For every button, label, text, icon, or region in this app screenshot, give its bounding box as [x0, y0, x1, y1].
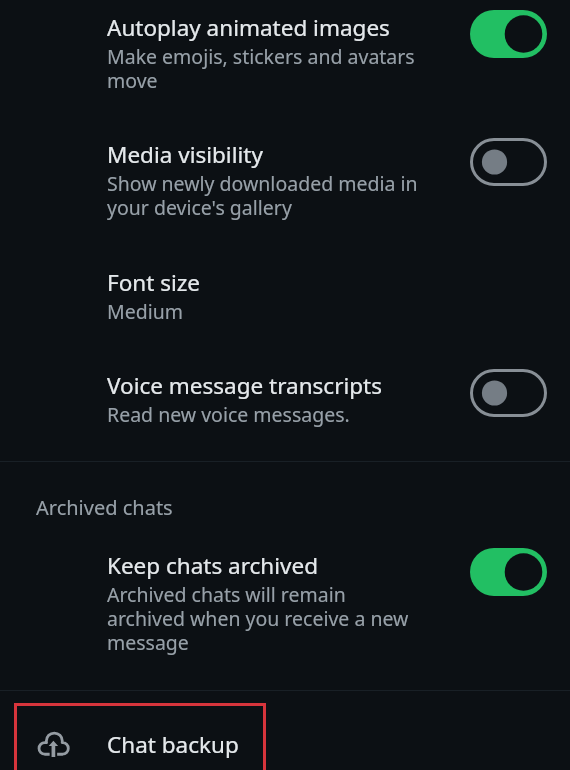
staticText: Chat backup [107, 731, 239, 759]
button[interactable]: Autoplay animated images [470, 10, 547, 58]
staticText: Media visibility [107, 141, 263, 169]
button[interactable] [0, 528, 570, 690]
button[interactable]: Keep chats archived [470, 548, 547, 596]
staticText: Make emojis, stickers and avatars move [107, 45, 419, 93]
staticText: Read new voice messages. [107, 403, 437, 427]
staticText: Medium [107, 300, 423, 324]
button[interactable] [0, 348, 570, 461]
staticText: Voice message transcripts [107, 372, 382, 400]
button[interactable]: Media visibility [470, 138, 547, 186]
button[interactable] [0, 0, 570, 117]
staticText: Keep chats archived [107, 552, 319, 580]
staticText: Font size [107, 269, 201, 297]
button[interactable]: Chat backup [14, 703, 266, 770]
staticText: Archived chats will remain archived when… [107, 583, 419, 655]
staticText: Show newly downloaded media in your devi… [107, 172, 423, 220]
button[interactable] [0, 117, 570, 245]
button[interactable]: Voice message transcripts [470, 369, 547, 417]
staticText: Autoplay animated images [107, 14, 390, 42]
staticText: Archived chats [36, 494, 173, 521]
button[interactable] [0, 245, 570, 348]
